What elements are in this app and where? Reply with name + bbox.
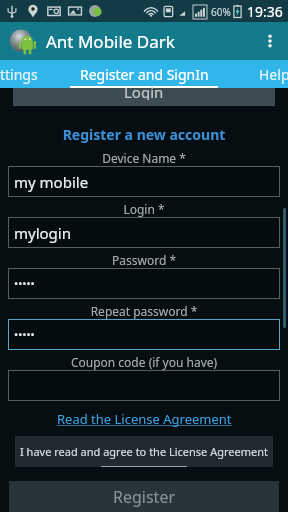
button[interactable] xyxy=(8,370,280,401)
button[interactable]: ••••• xyxy=(8,319,280,350)
staticText: mylogin xyxy=(14,223,71,243)
button[interactable]: mylogin xyxy=(8,217,280,248)
staticText: ••••• xyxy=(14,276,35,291)
button[interactable]: I have read and agree to the License Agr… xyxy=(15,436,273,467)
staticText: ••••• xyxy=(14,327,35,342)
button[interactable]: ••••• xyxy=(8,268,280,299)
button[interactable]: Register xyxy=(9,481,279,512)
staticText: Repeat password * xyxy=(0,303,288,319)
staticText: Coupon code (if you have) xyxy=(0,354,288,370)
button[interactable]: my mobile xyxy=(8,166,280,197)
button[interactable]: ttings xyxy=(0,65,40,84)
staticText: I have read and agree to the License Agr… xyxy=(20,444,268,459)
staticText: Device Name * xyxy=(0,150,288,166)
button[interactable]: Login xyxy=(13,88,275,106)
staticText: 60% xyxy=(211,5,231,19)
button[interactable]: Help xyxy=(257,65,288,84)
button[interactable]: Register and SignIn xyxy=(80,65,209,84)
staticText: 19:36 xyxy=(247,2,283,21)
staticText: Register and SignIn xyxy=(80,65,209,84)
staticText: Password * xyxy=(0,252,288,268)
staticText: Login * xyxy=(0,201,288,217)
staticText: Ant Mobile Dark xyxy=(46,30,175,53)
button[interactable]: More options xyxy=(252,22,288,60)
staticText: Register xyxy=(113,486,176,508)
staticText: Login xyxy=(124,82,164,100)
staticText: my mobile xyxy=(14,172,89,192)
staticText: Register a new account xyxy=(0,125,288,144)
button[interactable]: Read the License Agreement xyxy=(53,409,236,429)
